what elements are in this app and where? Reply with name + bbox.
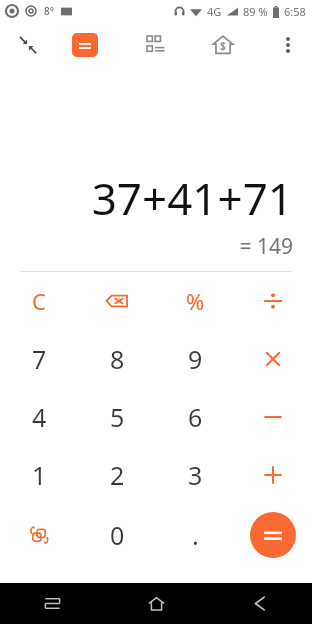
button[interactable]: Mortgage [202, 24, 244, 66]
button[interactable]: List view [136, 25, 176, 65]
staticText: = 149 [0, 232, 293, 261]
button[interactable]: Calculator [72, 33, 98, 57]
other: Multiply [261, 347, 285, 371]
other: Divide [261, 289, 285, 313]
button[interactable]: 7 [0, 330, 78, 388]
button[interactable]: Convert units [0, 504, 78, 566]
button[interactable]: 1 [0, 446, 78, 504]
button[interactable]: 4 [0, 388, 78, 446]
button[interactable]: 5 [78, 388, 156, 446]
staticText: 9 [188, 342, 203, 376]
other: Plus [261, 463, 285, 487]
staticText: 4G [207, 4, 222, 19]
button[interactable]: More options [268, 25, 308, 65]
staticText: 8° [44, 4, 54, 18]
staticText: 37+41+71 [0, 168, 293, 228]
button[interactable]: Plus [234, 446, 312, 504]
button[interactable]: Back [208, 583, 312, 624]
staticText: 7 [32, 342, 47, 376]
button[interactable]: . [156, 504, 234, 566]
button[interactable]: Backspace [78, 272, 156, 330]
staticText: 2 [110, 458, 125, 492]
button[interactable]: 6 [156, 388, 234, 446]
button[interactable]: Equals [250, 512, 296, 558]
button[interactable]: 2 [78, 446, 156, 504]
staticText: % [186, 286, 205, 316]
staticText: 8 [110, 342, 125, 376]
staticText: 4 [32, 400, 47, 434]
button[interactable]: Divide [234, 272, 312, 330]
button[interactable]: Collapse [8, 25, 48, 65]
button[interactable]: 3 [156, 446, 234, 504]
staticText: 1 [32, 458, 47, 492]
staticText: 3 [188, 458, 203, 492]
staticText: 0 [110, 518, 125, 552]
staticText: . [192, 518, 199, 552]
button[interactable]: Multiply [234, 330, 312, 388]
staticText: 5 [110, 400, 125, 434]
staticText: 89 % [243, 4, 268, 19]
button[interactable]: Recents [0, 583, 104, 624]
button[interactable]: % [156, 272, 234, 330]
other: Convert units [27, 523, 51, 547]
button[interactable]: Home [104, 583, 208, 624]
button[interactable]: Minus [234, 388, 312, 446]
button[interactable]: 8 [78, 330, 156, 388]
button[interactable]: 9 [156, 330, 234, 388]
button[interactable]: C [0, 272, 78, 330]
other: Minus [261, 405, 285, 429]
staticText: C [32, 286, 46, 316]
button[interactable]: 0 [78, 504, 156, 566]
staticText: 6:58 [284, 4, 306, 19]
other: Backspace [105, 289, 129, 313]
staticText: 6 [188, 400, 203, 434]
